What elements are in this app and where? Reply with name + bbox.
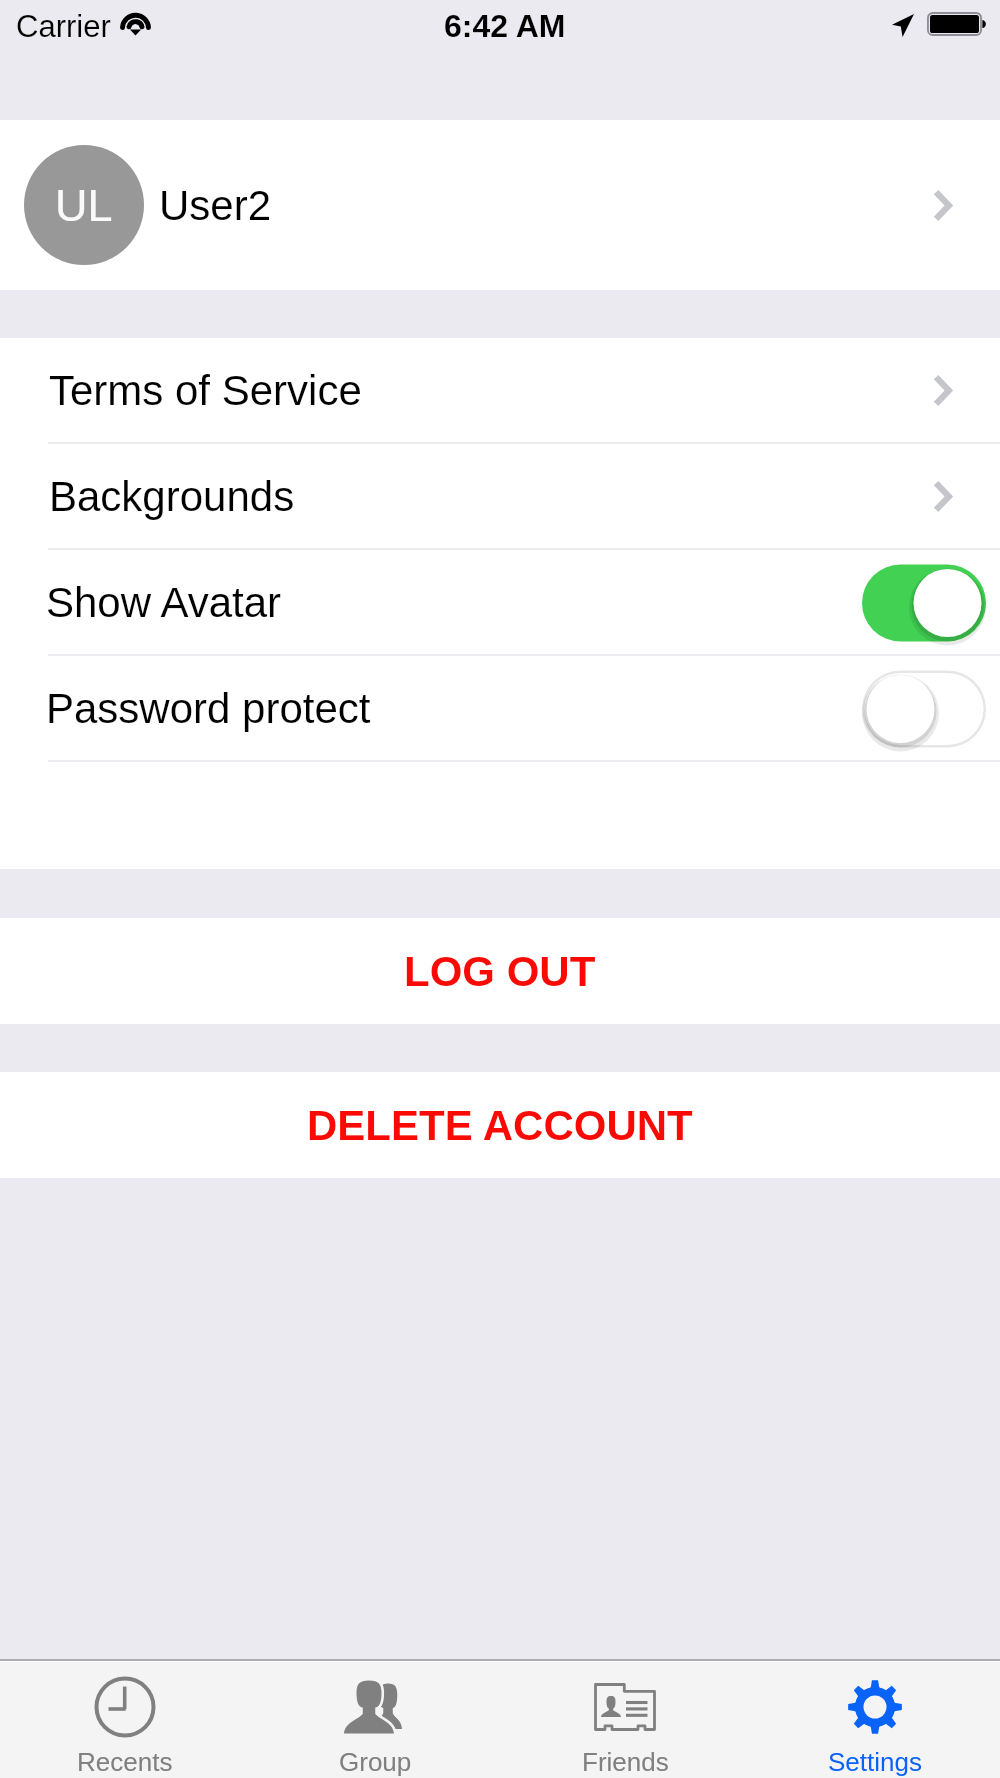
other: Toggle off (858, 668, 986, 749)
staticText: Recents (77, 1747, 173, 1776)
staticText: Carrier (16, 9, 111, 44)
button[interactable]: Settings (750, 1662, 1000, 1776)
button[interactable]: Group (250, 1662, 500, 1776)
other: Battery (927, 12, 987, 36)
button[interactable]: DELETE ACCOUNT (0, 1072, 1000, 1178)
staticText: DELETE ACCOUNT (307, 1102, 693, 1149)
button[interactable]: Friends (500, 1662, 750, 1776)
button[interactable]: UL (0, 120, 1000, 290)
staticText: 6:42 AM (444, 8, 566, 44)
other: Toggle on (858, 562, 986, 643)
staticText: Group (339, 1747, 412, 1776)
other: Wi-Fi (120, 11, 151, 36)
staticText: Show Avatar (46, 579, 282, 626)
staticText: Friends (582, 1747, 669, 1776)
button[interactable]: Password protect (0, 656, 1000, 760)
staticText: Backgrounds (49, 473, 295, 520)
staticText: Password protect (46, 685, 371, 732)
button[interactable]: Terms of Service (0, 338, 1000, 442)
staticText: Terms of Service (49, 367, 362, 414)
button[interactable]: Show Avatar (0, 550, 1000, 654)
staticText: UL (55, 180, 113, 230)
other: Location (892, 14, 914, 37)
staticText: LOG OUT (404, 948, 596, 995)
button[interactable]: Backgrounds (0, 444, 1000, 548)
button[interactable]: Recents (0, 1662, 250, 1776)
button[interactable]: LOG OUT (0, 918, 1000, 1024)
staticText: Settings (828, 1747, 922, 1776)
staticText: User2 (159, 182, 272, 229)
